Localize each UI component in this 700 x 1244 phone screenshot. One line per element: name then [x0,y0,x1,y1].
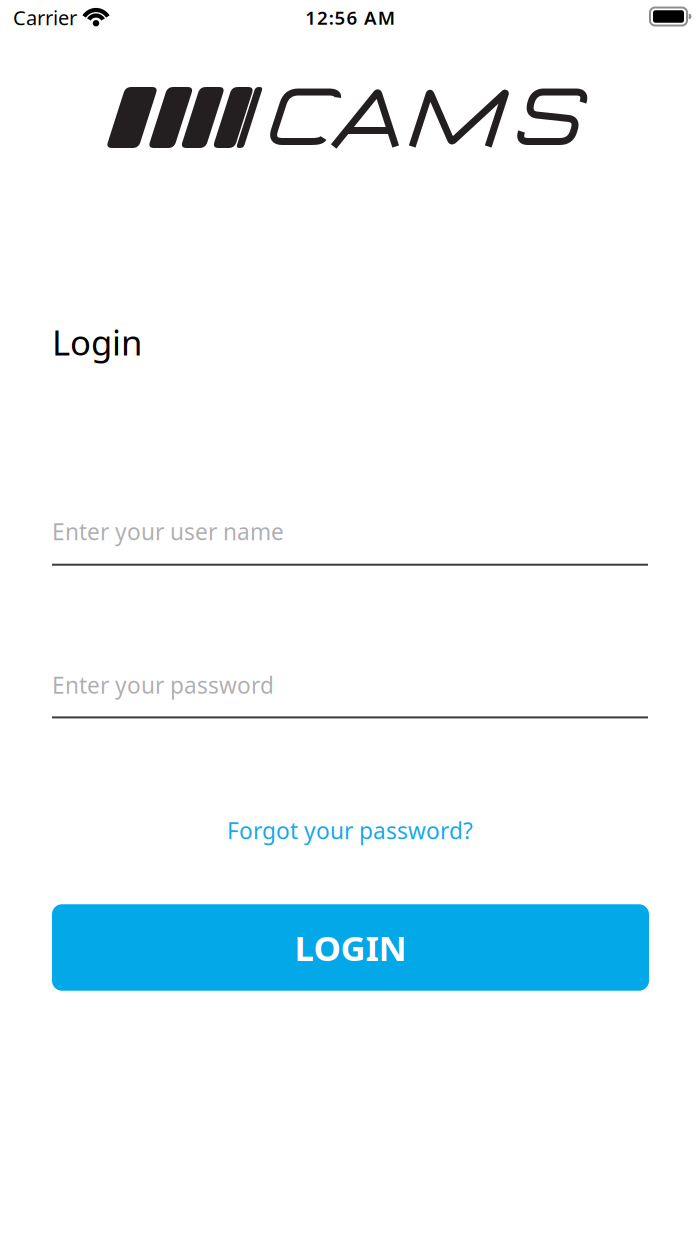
staticText: Carrier [13,4,77,31]
button[interactable]: Forgot your password? [227,815,473,845]
staticText: Enter your user name [52,516,284,546]
staticText: Login [52,319,142,365]
button[interactable]: LOGIN [52,904,649,991]
staticText: 12:56 AM [305,5,395,30]
staticText: LOGIN [294,924,406,970]
button[interactable]: Enter your user name [52,502,648,566]
staticText: Enter your password [52,670,274,700]
staticText: Forgot your password? [227,815,473,845]
button[interactable]: Enter your password [52,654,648,718]
